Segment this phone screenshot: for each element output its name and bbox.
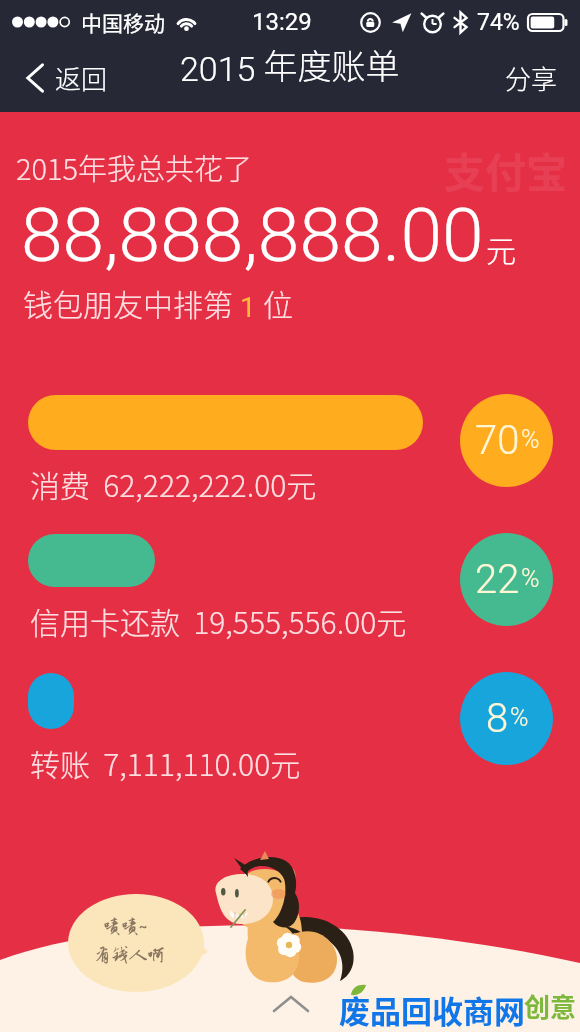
button[interactable]: 70 — [460, 394, 553, 487]
staticText: % — [521, 564, 540, 593]
staticText: 分享 — [505, 59, 558, 97]
staticText: % — [521, 425, 540, 454]
button[interactable]: 8 — [460, 672, 553, 765]
button[interactable] — [28, 395, 423, 450]
staticText: 有钱人啊 — [93, 945, 165, 965]
button[interactable]: 分享 — [483, 44, 580, 112]
staticText: 位 — [263, 281, 293, 324]
button[interactable]: 返回 — [0, 44, 122, 112]
staticText: 中国移动 — [81, 7, 165, 37]
staticText: 8 — [486, 695, 509, 742]
staticText: 信用卡还款 19,555,556.00元 — [30, 599, 407, 642]
staticText: 支付宝 — [444, 140, 567, 199]
staticText: 啧啧~ — [103, 916, 147, 936]
button[interactable] — [28, 534, 155, 587]
button[interactable]: 22 — [460, 533, 553, 626]
staticText: 元 — [486, 227, 516, 270]
staticText: 13:29 — [252, 8, 312, 36]
staticText: 转账 7,111,110.00元 — [30, 741, 301, 784]
staticText: 返回 — [55, 59, 108, 97]
other: Scroll up — [272, 995, 310, 1013]
button[interactable] — [28, 673, 74, 729]
staticText: 70 — [475, 417, 520, 464]
staticText: 2015年我总共花了 — [16, 146, 253, 188]
staticText: 88,888,888.00 — [21, 191, 484, 279]
staticText: % — [510, 703, 529, 732]
staticText: 22 — [475, 556, 520, 603]
staticText: 钱包朋友中排第 — [23, 281, 233, 324]
staticText: 消费 62,222,222.00元 — [30, 462, 317, 505]
staticText: 2015 — [180, 49, 256, 89]
staticText: 74% — [477, 9, 520, 36]
staticText: 创意 — [524, 987, 577, 1025]
staticText: 废品回收商网 — [339, 987, 525, 1032]
staticText: 年度账单 — [256, 40, 400, 89]
staticText: 1 — [233, 291, 263, 324]
